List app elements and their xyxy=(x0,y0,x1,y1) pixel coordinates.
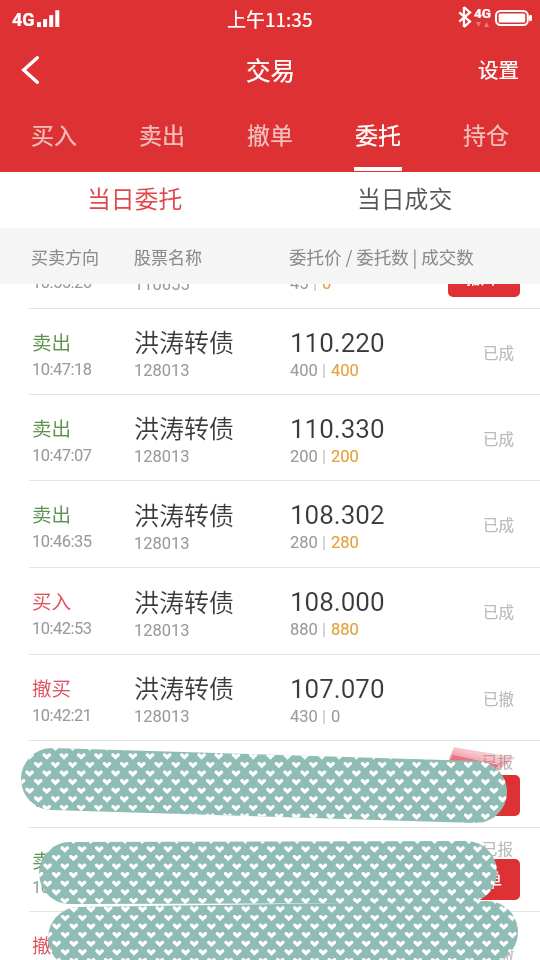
staticText: 持仓 xyxy=(463,117,509,150)
button[interactable]: 卖出 xyxy=(0,309,540,394)
staticText: 卖出 xyxy=(32,327,72,355)
staticText: 128013 xyxy=(134,534,190,553)
staticText: 股票名称 xyxy=(134,244,202,269)
staticText: 当日委托 xyxy=(87,180,183,214)
staticText: 买卖方向 xyxy=(31,244,99,269)
staticText: | xyxy=(313,274,318,293)
staticText: 撤单 xyxy=(466,782,502,808)
staticText: 10:42:21 xyxy=(32,706,92,725)
staticText: 110.500 xyxy=(290,241,385,271)
staticText: 110.500 xyxy=(290,760,385,790)
staticText: 128013 xyxy=(134,707,190,726)
staticText: 110.330 xyxy=(290,414,385,444)
staticText: 已撤 xyxy=(483,944,515,960)
staticText: 洪涛转债 xyxy=(134,841,235,877)
staticText: 委托价 / 委托数 | 成交数 xyxy=(289,244,474,269)
staticText: 4G xyxy=(474,5,491,21)
staticText: 卖出 xyxy=(32,240,72,268)
button[interactable]: 撤单 xyxy=(448,775,520,816)
staticText: 108.000 xyxy=(290,587,385,617)
staticText: 卖出 xyxy=(139,117,185,150)
staticText: 107.070 xyxy=(290,674,385,704)
staticText: 撤单 xyxy=(247,117,293,150)
button[interactable]: 卖出 xyxy=(108,101,216,172)
staticText: 10:41:22 xyxy=(32,878,92,897)
staticText: 110655 xyxy=(134,275,190,294)
staticText: 已报 xyxy=(482,837,514,859)
staticText: | xyxy=(322,361,327,380)
staticText: 10:47:18 xyxy=(32,360,92,379)
staticText: 已成 xyxy=(483,600,515,622)
button[interactable]: 撤单 xyxy=(216,101,324,172)
staticText: 洪涛转债 xyxy=(134,323,235,359)
staticText: 已报 xyxy=(482,750,514,772)
staticText: 洪涛转债 xyxy=(134,927,235,960)
staticText: 设置 xyxy=(478,54,519,84)
staticText: 买入 xyxy=(32,586,72,614)
staticText: | xyxy=(322,707,327,726)
staticText: 128013 xyxy=(134,794,190,813)
staticText: 撤买 xyxy=(32,673,72,701)
staticText: 委托 xyxy=(355,117,401,150)
staticText: 108.302 xyxy=(290,500,385,530)
staticText: | xyxy=(322,793,327,812)
staticText: 10:55:26 xyxy=(32,273,92,292)
staticText: 128013 xyxy=(134,879,190,898)
staticText: 400 xyxy=(290,361,318,380)
staticText: 洪涛转债 xyxy=(134,756,235,792)
staticText: 280 xyxy=(290,533,318,552)
staticText: 880 xyxy=(290,620,318,639)
button[interactable]: 卖出 xyxy=(0,741,540,827)
staticText: 已成 xyxy=(483,341,515,363)
staticText: 100 xyxy=(290,793,318,812)
staticText: 200 xyxy=(290,447,318,466)
button[interactable]: 撤单 xyxy=(448,859,520,900)
staticText: 已成 xyxy=(483,513,515,535)
staticText: 400 xyxy=(331,361,359,380)
staticText: 洪涛转债 xyxy=(134,669,235,705)
button[interactable]: 设置 xyxy=(456,38,540,101)
staticText: 128013 xyxy=(134,621,190,640)
staticText: 100 xyxy=(290,879,318,898)
staticText: 880 xyxy=(331,620,359,639)
staticText: 45 xyxy=(290,274,309,293)
staticText: 当日成交 xyxy=(357,180,453,214)
staticText: 128013 xyxy=(134,447,190,466)
button[interactable]: 买入 xyxy=(0,568,540,654)
staticText: 洪涛转债 xyxy=(134,409,235,445)
staticText: 0 xyxy=(322,274,332,293)
button[interactable]: 持仓 xyxy=(432,101,540,172)
staticText: | xyxy=(322,620,327,639)
staticText: 撤单 xyxy=(466,263,502,289)
staticText: 128013 xyxy=(134,361,190,380)
button[interactable]: 卖出 xyxy=(0,828,540,911)
button[interactable]: 买入 xyxy=(0,101,108,172)
staticText: 110.600 xyxy=(290,846,385,876)
staticText: | xyxy=(322,533,327,552)
staticText: 110.220 xyxy=(290,328,385,358)
staticText: 已撤 xyxy=(483,687,515,709)
button[interactable]: 卖出 xyxy=(0,395,540,480)
staticText: 4G xyxy=(12,9,35,30)
staticText: 撤买 xyxy=(32,930,72,958)
button[interactable]: 当日委托 xyxy=(0,172,270,228)
staticText: 10:42:53 xyxy=(32,619,92,638)
staticText: 洪涛转债 xyxy=(134,237,235,273)
button[interactable]: 卖出 xyxy=(0,481,540,567)
staticText: 卖出 xyxy=(32,499,72,527)
button[interactable]: 当日成交 xyxy=(270,172,540,228)
button[interactable]: 撤买 xyxy=(0,655,540,740)
button[interactable]: 撤单 xyxy=(448,256,520,297)
staticText: 10:41:58 xyxy=(32,792,92,811)
button[interactable]: 撤买 xyxy=(0,912,540,960)
button[interactable]: 卖出 xyxy=(0,227,540,308)
staticText: | xyxy=(322,879,327,898)
staticText: 10:47:07 xyxy=(32,446,92,465)
staticText: 10:46:35 xyxy=(32,532,92,551)
staticText: 洪涛转债 xyxy=(134,496,235,532)
staticText: 卖出 xyxy=(32,413,72,441)
staticText: 买入 xyxy=(31,117,77,150)
button[interactable]: 委托 xyxy=(324,101,432,172)
button[interactable]: Back xyxy=(0,38,60,101)
